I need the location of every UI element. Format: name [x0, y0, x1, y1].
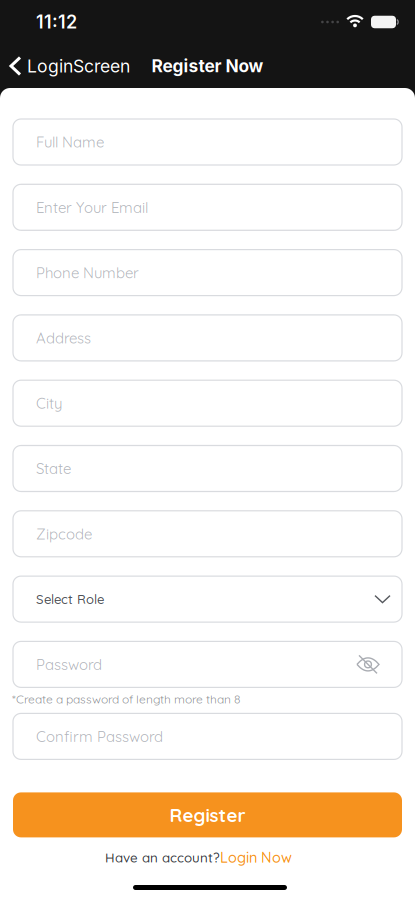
staticText: *Create a password of length more than 8	[12, 691, 240, 706]
staticText: City	[36, 394, 62, 413]
staticText: Register	[169, 803, 245, 826]
staticText: Zipcode	[36, 524, 92, 543]
button[interactable]: Password	[13, 641, 402, 687]
staticText: Select Role	[36, 591, 104, 607]
button[interactable]: Address	[13, 315, 402, 361]
button[interactable]: City	[13, 380, 402, 426]
button[interactable]: Zipcode	[13, 511, 402, 557]
staticText: Have an account?	[105, 849, 220, 866]
button[interactable]: Show password	[356, 654, 380, 674]
staticText: 11:12	[36, 11, 77, 33]
staticText: Login Now	[220, 848, 292, 866]
button[interactable]: Login Now	[220, 848, 292, 866]
button[interactable]: Full Name	[13, 119, 402, 165]
staticText: Phone Number	[36, 263, 139, 282]
staticText: Register Now	[151, 55, 263, 76]
staticText: Full Name	[36, 133, 104, 151]
button[interactable]: Enter Your Email	[13, 184, 402, 230]
button[interactable]: Register	[13, 792, 402, 837]
button[interactable]: Confirm Password	[13, 713, 402, 759]
staticText: Enter Your Email	[36, 198, 148, 217]
staticText: LoginScreen	[27, 55, 130, 77]
staticText: Password	[36, 655, 102, 674]
button[interactable]: State	[13, 445, 402, 491]
button[interactable]: Phone Number	[13, 250, 402, 296]
button[interactable]: Back	[0, 55, 130, 77]
button[interactable]: Select Role	[13, 576, 402, 622]
staticText: Address	[36, 329, 91, 347]
staticText: Confirm Password	[36, 727, 163, 746]
staticText: State	[36, 459, 71, 478]
